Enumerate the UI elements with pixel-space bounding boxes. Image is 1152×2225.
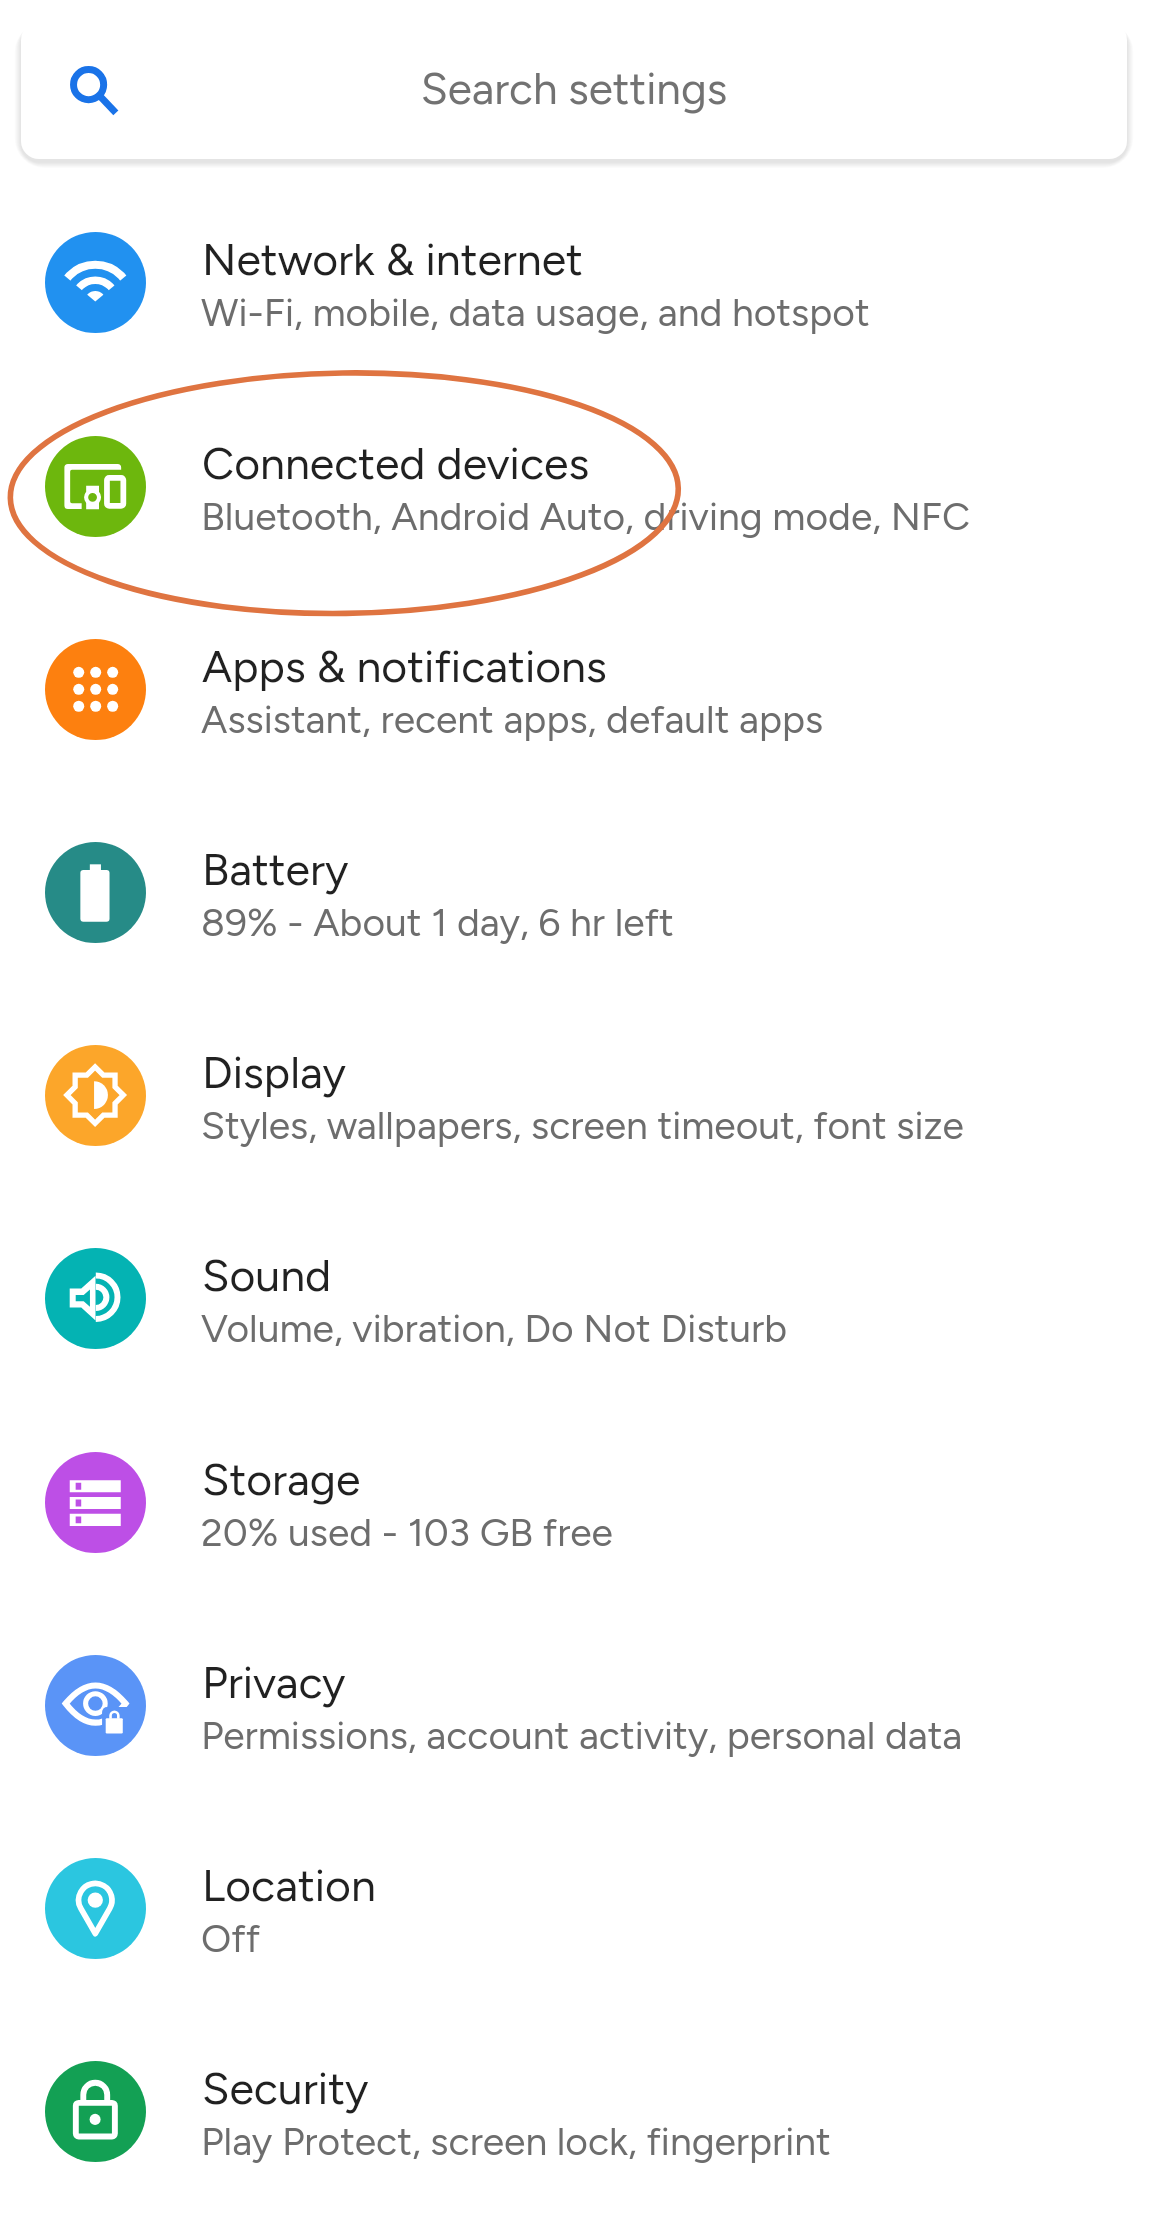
button[interactable]: Apps & notifications <box>0 588 1152 791</box>
button[interactable]: Network & internet <box>0 181 1152 384</box>
button[interactable]: Sound <box>0 1197 1152 1400</box>
staticText: Apps & notifications <box>202 640 607 694</box>
staticText: Permissions, account activity, personal … <box>201 1712 963 1759</box>
staticText: Battery <box>202 843 349 897</box>
staticText: Connected devices <box>202 437 590 491</box>
staticText: Security <box>202 2062 369 2116</box>
staticText: Volume, vibration, Do Not Disturb <box>201 1305 788 1352</box>
staticText: Bluetooth, Android Auto, driving mode, N… <box>201 493 971 540</box>
staticText: 89% - About 1 day, 6 hr left <box>201 899 674 946</box>
staticText: Display <box>202 1046 346 1100</box>
staticText: Search settings <box>21 62 1127 115</box>
button[interactable]: Display <box>0 994 1152 1197</box>
staticText: Styles, wallpapers, screen timeout, font… <box>201 1102 964 1149</box>
staticText: Location <box>202 1859 376 1913</box>
button[interactable]: Connected devices <box>0 385 1152 588</box>
staticText: Assistant, recent apps, default apps <box>201 696 824 743</box>
staticText: Network & internet <box>202 233 583 287</box>
staticText: Off <box>201 1915 261 1962</box>
button[interactable]: Location <box>0 1807 1152 2010</box>
button[interactable]: Privacy <box>0 1604 1152 1807</box>
staticText: Wi-Fi, mobile, data usage, and hotspot <box>201 289 870 336</box>
button[interactable]: Battery <box>0 791 1152 994</box>
button[interactable]: Search settings <box>21 22 1127 159</box>
staticText: Sound <box>202 1249 332 1303</box>
staticText: 20% used - 103 GB free <box>201 1509 613 1556</box>
button[interactable]: Storage <box>0 1401 1152 1604</box>
button[interactable]: Security <box>0 2010 1152 2213</box>
staticText: Play Protect, screen lock, fingerprint <box>201 2118 831 2165</box>
staticText: Storage <box>202 1453 361 1507</box>
staticText: Privacy <box>202 1656 346 1710</box>
